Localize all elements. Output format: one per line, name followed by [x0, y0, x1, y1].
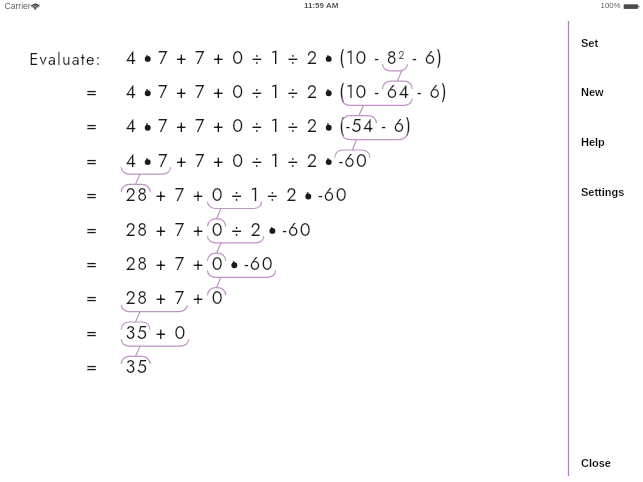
button[interactable]: Set [575, 32, 639, 54]
button[interactable]: Settings [575, 181, 639, 203]
button[interactable]: Close [575, 452, 639, 474]
staticText: Set [581, 37, 599, 49]
button[interactable]: Help [575, 131, 639, 153]
staticText: New [581, 86, 604, 98]
staticText: Help [581, 136, 605, 148]
staticText: Settings [581, 186, 625, 198]
button[interactable]: New [575, 81, 639, 103]
staticText: Close [581, 457, 611, 469]
